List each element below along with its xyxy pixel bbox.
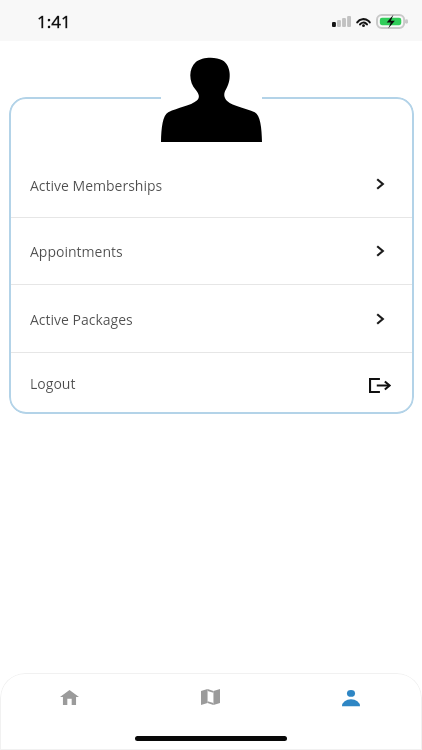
button[interactable]: Map	[171, 673, 250, 725]
staticText: 1:41	[37, 10, 71, 33]
button[interactable]: Appointments	[9, 218, 414, 284]
button[interactable]: Active Memberships	[9, 150, 414, 217]
staticText: Active Memberships	[30, 176, 163, 195]
button[interactable]: Profile	[312, 673, 390, 725]
button[interactable]: Logout	[9, 353, 414, 414]
staticText: Appointments	[30, 242, 123, 261]
button[interactable]: Active Packages	[9, 285, 414, 352]
button[interactable]: Home	[30, 673, 109, 725]
staticText: Active Packages	[30, 310, 133, 329]
staticText: Logout	[30, 374, 76, 393]
other: Logout	[369, 378, 390, 393]
